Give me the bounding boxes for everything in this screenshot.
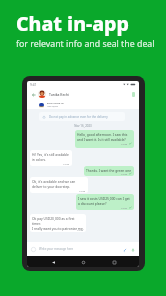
staticText: 14:27 [121,206,128,209]
button[interactable]: Ok pay USD20,000 as a first timer. I rea… [30,214,86,232]
button[interactable]: Attach file [122,247,127,252]
button[interactable]: Back [30,91,37,98]
staticText: 9:41 [30,83,37,87]
staticText: 14:30 [77,228,84,231]
staticText: USD 25,000 [47,105,58,108]
staticText: Thanks. I want the green one [86,168,132,172]
button[interactable]: Hi! Yes, it's still available in colors. [30,150,72,166]
staticText: 14:23 [121,172,128,175]
staticText: Write your message here [39,247,74,251]
button[interactable]: More options [132,92,135,97]
button[interactable]: Thanks. I want the green one [84,166,134,176]
staticText: I saw it costs USD25,000 can I get a dis… [78,196,132,206]
staticText: Tunika Kechi [49,92,69,96]
button[interactable]: Home [78,257,88,267]
staticText: 14:25 [79,189,86,192]
staticText: Nov 16, 2023 [27,124,139,128]
staticText: 14:20 [121,142,128,145]
button[interactable]: Hello, good afternoon. I saw this and I … [75,130,134,148]
staticText: Chat in-app [16,10,129,37]
button[interactable]: Ok, it's available and we can deliver to… [30,177,88,193]
button[interactable]: Record voice message [130,247,135,252]
staticText: Do not pay in advance even for the deliv… [49,115,108,119]
staticText: Battery Racing Car [47,102,64,105]
staticText: Ok, it's available and we can deliver to… [32,179,86,189]
button[interactable]: I saw it costs USD25,000 can I get a dis… [76,194,134,210]
staticText: for relevant info and seal the deal [16,38,155,50]
staticText: Hello, good afternoon. I saw this and I … [77,132,132,142]
other: Emoji [31,247,36,252]
staticText: Ok pay USD20,000 as a first timer. I rea… [32,216,84,231]
button[interactable]: Back [48,257,58,267]
staticText: 14:22 [63,162,70,165]
button[interactable]: Recent apps [109,257,119,267]
staticText: Hi! Yes, it's still available in colors. [32,152,70,162]
